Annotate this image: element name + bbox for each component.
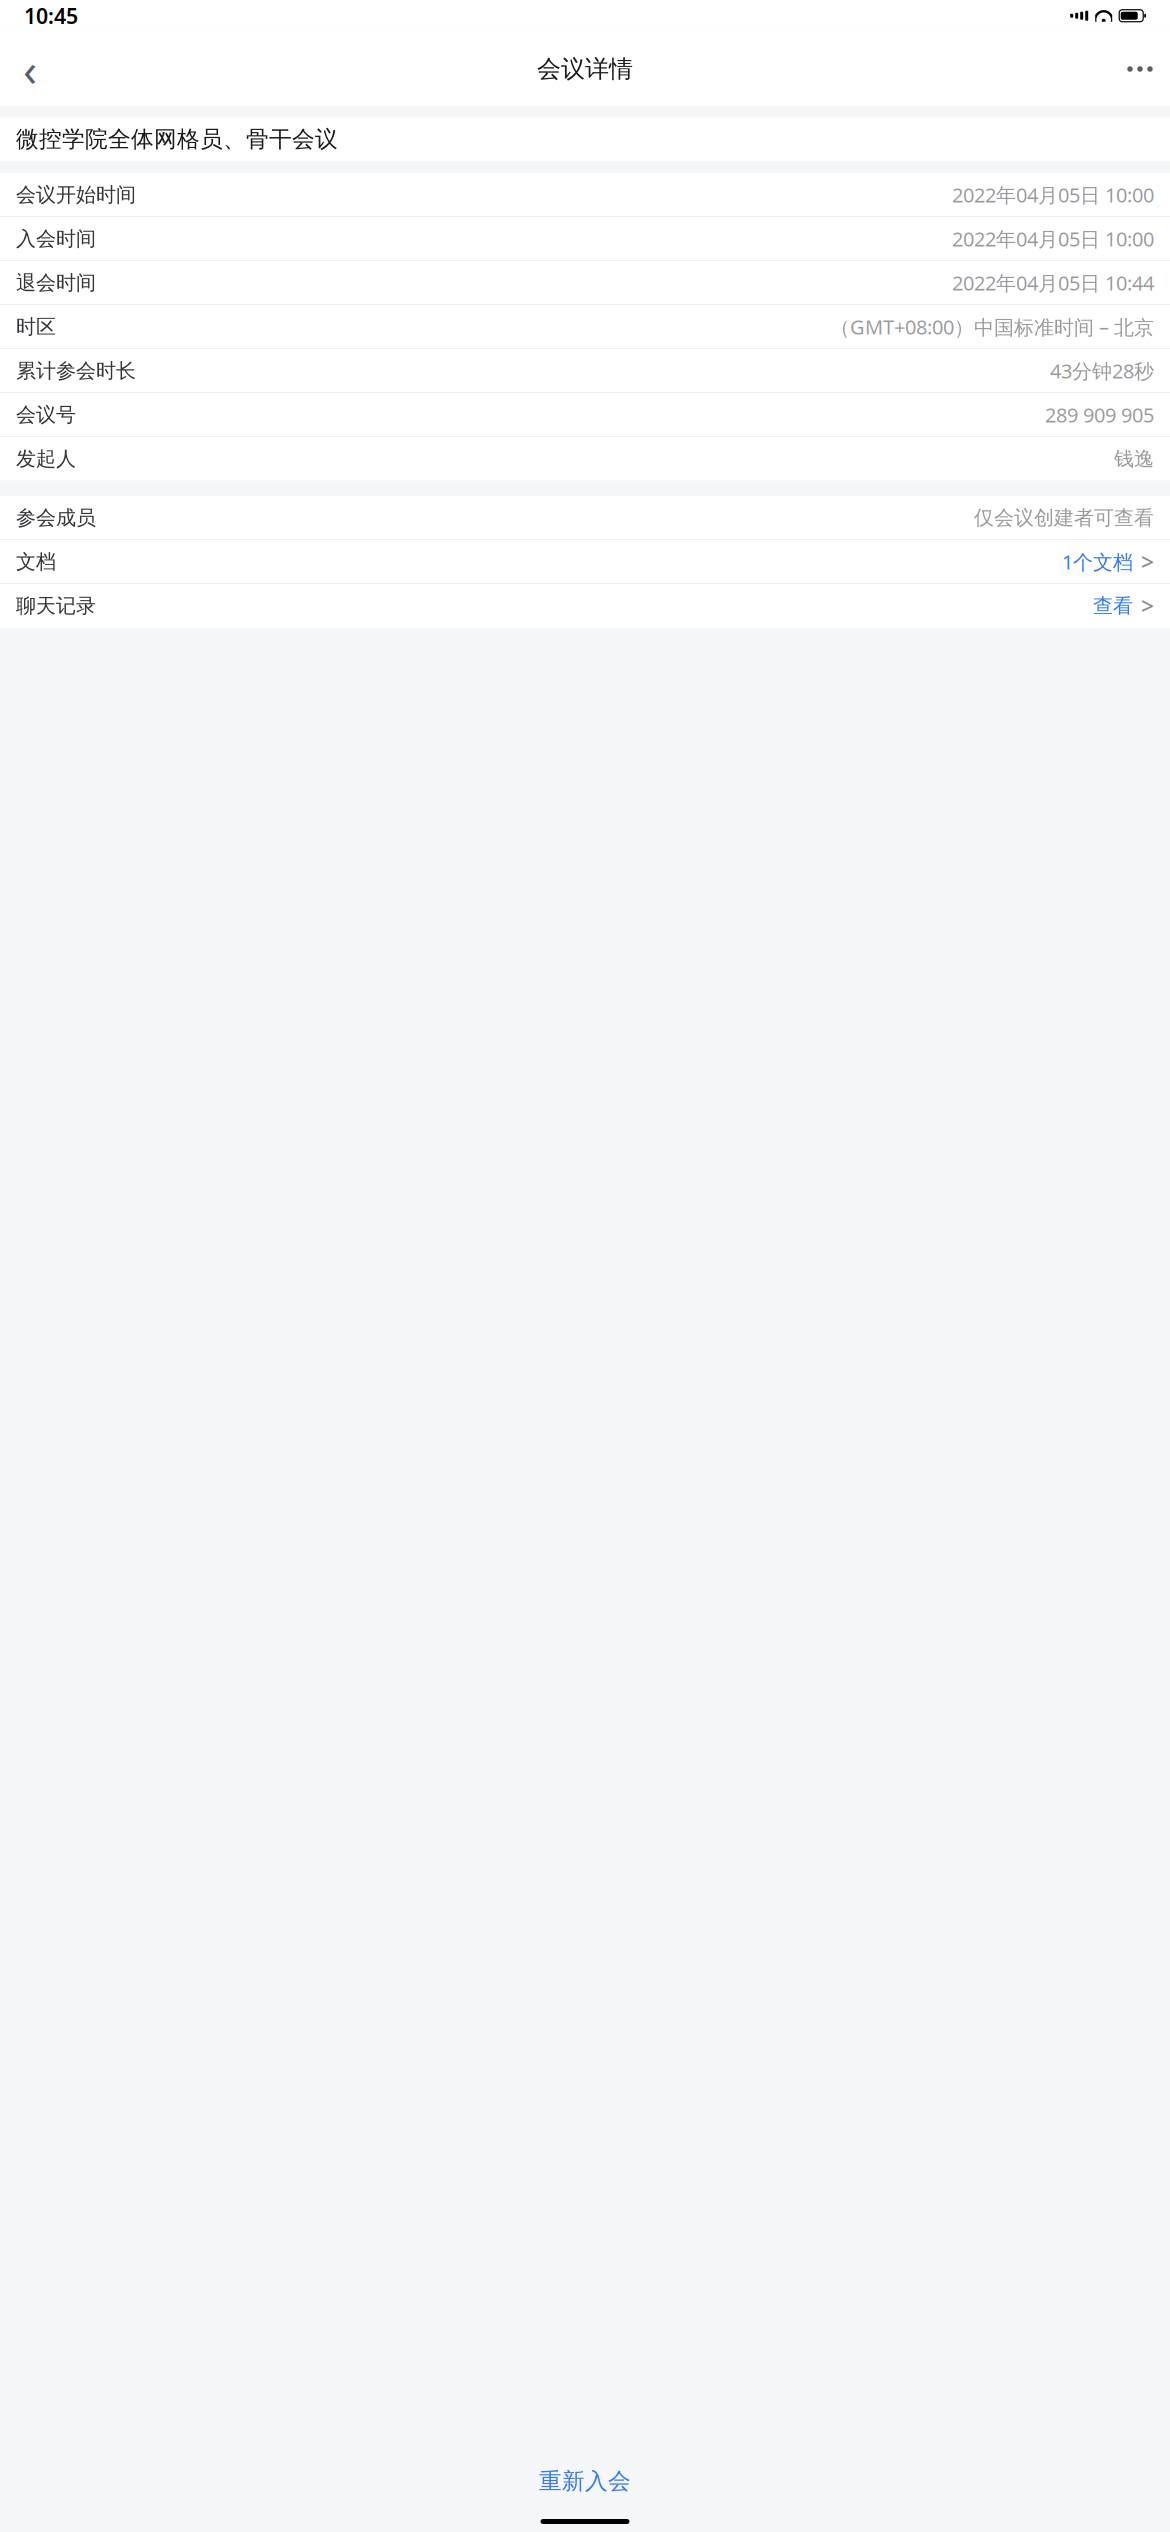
staticText: 时区 [16,314,56,339]
staticText: 退会时间 [16,270,96,295]
staticText: ‹ [23,39,37,99]
staticText: 查看 [1093,593,1133,618]
staticText: 289 909 905 [1045,401,1154,428]
staticText: 文档 [16,549,56,574]
staticText: 10:45 [24,2,78,30]
staticText: 发起人 [16,446,76,471]
staticText: > [1141,591,1154,621]
button[interactable]: 重新入会 [499,2457,671,2505]
staticText: （GMT+08:00）中国标准时间 – 北京 [830,313,1154,340]
button[interactable]: 聊天记录 [0,584,1170,627]
staticText: 1个文档 [1062,548,1133,575]
button[interactable]: 文档 [0,540,1170,583]
staticText: 会议开始时间 [16,182,136,207]
staticText: 累计参会时长 [16,358,136,383]
staticText: > [1141,547,1154,577]
staticText: 会议详情 [537,54,633,84]
staticText: 2022年04月05日 10:00 [952,225,1154,252]
staticText: 参会成员 [16,505,96,530]
staticText: 43分钟28秒 [1050,357,1154,384]
staticText: 入会时间 [16,226,96,251]
staticText: 重新入会 [539,2467,631,2495]
staticText: 2022年04月05日 10:44 [952,269,1154,296]
staticText: 仅会议创建者可查看 [974,505,1154,530]
staticText: 钱逸 [1114,446,1154,471]
button[interactable]: 返回 [8,47,52,91]
staticText: 聊天记录 [16,593,96,618]
staticText: 2022年04月05日 10:00 [952,181,1154,208]
staticText: 微控学院全体网格员、骨干会议 [16,125,338,153]
button[interactable]: 更多 [1118,47,1162,91]
staticText: 会议号 [16,402,76,427]
